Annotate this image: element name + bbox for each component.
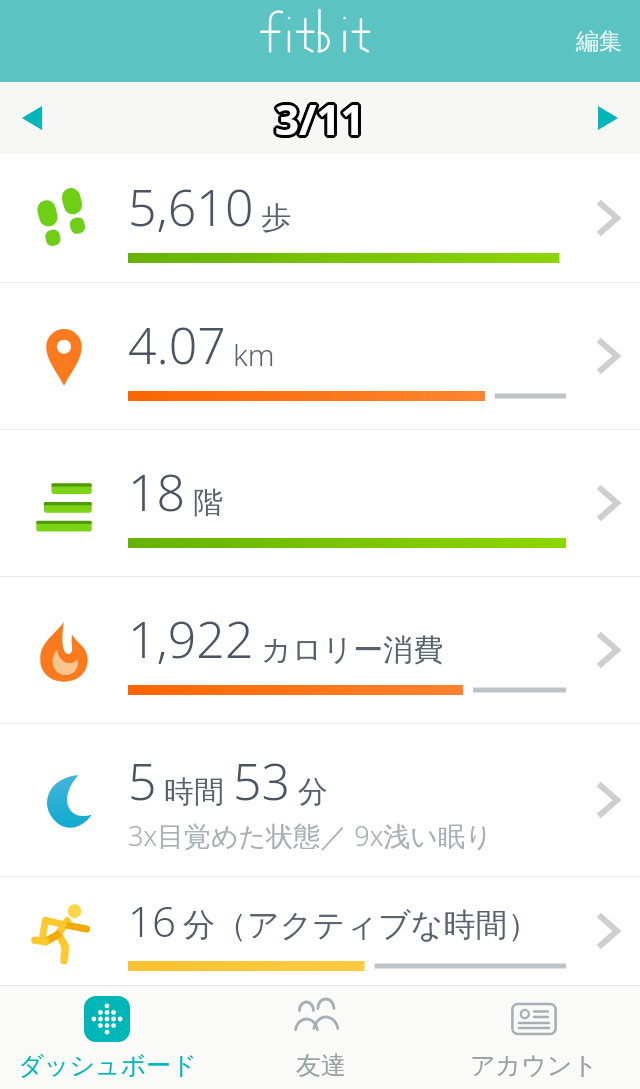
staticText: アカウント [470,1050,598,1081]
staticText: 3/11 [275,93,365,150]
staticText: 編集 [576,27,622,56]
staticText: 3/11 [273,91,363,148]
staticText: 18 [128,458,186,526]
staticText: 3/11 [276,87,366,144]
button[interactable]: 16 [0,877,640,985]
staticText: 3/11 [275,89,365,146]
staticText: 3/11 [272,90,362,147]
staticText: 3/11 [274,91,364,148]
staticText: 53 [233,747,291,815]
staticText: 3/11 [278,90,368,147]
staticText: 3/11 [276,90,366,147]
staticText: 3/11 [276,89,366,146]
button[interactable]: 4.07 [0,283,640,429]
staticText: 分 [298,773,328,811]
staticText: 階 [193,484,223,522]
staticText: 3/11 [273,92,363,149]
staticText: 3/11 [272,89,362,146]
staticText: 友達 [296,1050,346,1081]
staticText: 5 [128,747,157,815]
staticText: 3/11 [278,89,368,146]
button[interactable]: Previous day [0,88,64,148]
staticText: 3/11 [274,88,364,145]
staticText: 3/11 [276,93,366,150]
staticText: 時間 [164,773,224,811]
staticText: 3/11 [274,92,364,149]
button[interactable]: 5 [0,724,640,876]
button[interactable]: 1,922 [0,577,640,723]
staticText: km [233,334,275,375]
button[interactable]: 5,610 [0,154,640,282]
staticText: 3/11 [272,91,362,148]
staticText: 3/11 [276,88,366,145]
staticText: 3/11 [275,90,365,147]
button[interactable]: 18 [0,430,640,576]
staticText: 3/11 [274,90,364,147]
staticText: 4.07 [128,311,226,379]
staticText: 3/11 [275,88,365,145]
staticText: 3/11 [274,87,364,144]
button[interactable]: Next day [576,88,640,148]
button[interactable]: ダッシュボード [0,985,214,1089]
staticText: 3/11 [277,92,367,149]
staticText: 3/11 [275,90,365,147]
staticText: 3x目覚めた状態／ 9x浅い眠り [128,817,493,854]
staticText: 3/11 [273,90,363,147]
staticText: 3/11 [273,88,363,145]
staticText: 歩 [261,199,291,237]
button[interactable]: 友達 [214,985,427,1089]
staticText: カロリー消費 [261,631,444,669]
staticText: 5,610 [128,173,254,241]
staticText: 3/11 [273,89,363,146]
staticText: 3/11 [275,92,365,149]
staticText: 3/11 [277,90,367,147]
staticText: 3/11 [275,87,365,144]
staticText: 3/11 [278,91,368,148]
staticText: 3/11 [275,91,365,148]
staticText: 3/11 [277,91,367,148]
staticText: 3/11 [274,93,364,150]
staticText: 分（アクティブな時間） [183,905,540,945]
staticText: 3/11 [274,89,364,146]
staticText: ダッシュボード [18,1050,197,1081]
button[interactable]: 編集 [558,17,640,66]
staticText: 3/11 [276,91,366,148]
staticText: 3/11 [277,88,367,145]
staticText: 1,922 [128,605,254,673]
staticText: 3/11 [276,92,366,149]
staticText: 16 [128,892,176,949]
staticText: 3/11 [277,89,367,146]
button[interactable]: アカウント [427,985,640,1089]
